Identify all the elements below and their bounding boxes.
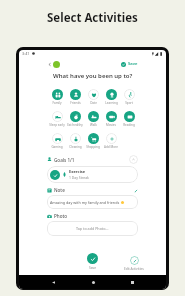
- button[interactable]: Reading: [120, 111, 138, 127]
- button[interactable]: Tap to add Photo...: [47, 221, 138, 236]
- button[interactable]: Collapse goals: [129, 155, 138, 164]
- staticText: Sport: [125, 101, 133, 105]
- button[interactable]: Date: [84, 89, 102, 105]
- staticText: Eat healthy: [67, 123, 83, 127]
- staticText: Date: [90, 101, 97, 105]
- button[interactable]: Shopping: [84, 133, 102, 149]
- staticText: Note: [54, 187, 65, 193]
- staticText: 3:41: [22, 51, 30, 56]
- button[interactable]: Edit Activities: [124, 256, 144, 271]
- staticText: Add More: [104, 145, 118, 149]
- staticText: Gaming: [51, 145, 63, 149]
- staticText: Learning: [105, 101, 118, 105]
- staticText: Shopping: [86, 145, 100, 149]
- staticText: Walk: [90, 123, 97, 127]
- button[interactable]: Sport: [120, 89, 138, 105]
- button[interactable]: Profile: [53, 61, 60, 68]
- button[interactable]: Gaming: [48, 133, 66, 149]
- button[interactable]: Edit note: [133, 188, 138, 193]
- staticText: 1 Day Streak: [69, 175, 89, 180]
- staticText: Save: [128, 61, 138, 67]
- button[interactable]: Cleaning: [66, 133, 84, 149]
- staticText: Friends: [70, 101, 81, 105]
- staticText: Exercise: [69, 169, 86, 174]
- button[interactable]: Amazing day with my family and friends: [47, 195, 138, 209]
- staticText: Reading: [123, 123, 135, 127]
- staticText: Goals 1/1: [54, 157, 75, 163]
- button[interactable]: Movies: [102, 111, 120, 127]
- button[interactable]: Exercise: [47, 166, 138, 183]
- button[interactable]: Back: [48, 277, 58, 287]
- button[interactable]: Friends: [66, 89, 84, 105]
- button[interactable]: Sleep early: [48, 111, 66, 127]
- staticText: Sleep early: [49, 123, 65, 127]
- button[interactable]: Home: [88, 277, 98, 287]
- button[interactable]: Walk: [84, 111, 102, 127]
- staticText: Select Activities: [47, 10, 138, 26]
- staticText: Family: [52, 101, 62, 105]
- staticText: Cleaning: [69, 145, 82, 149]
- staticText: Movies: [106, 123, 116, 127]
- staticText: What have you been up to?: [53, 72, 133, 79]
- staticText: Photo: [54, 213, 68, 219]
- staticText: Amazing day with my family and friends: [50, 200, 120, 205]
- button[interactable]: Add More: [102, 133, 120, 149]
- staticText: Save: [89, 266, 96, 270]
- button[interactable]: Save: [87, 253, 98, 270]
- button[interactable]: Family: [48, 89, 66, 105]
- staticText: Edit Activities: [124, 267, 144, 271]
- button[interactable]: Eat healthy: [66, 111, 84, 127]
- button[interactable]: Recents: [127, 277, 137, 287]
- button[interactable]: Learning: [102, 89, 120, 105]
- button[interactable]: Back: [47, 62, 52, 67]
- staticText: Tap to add Photo...: [76, 226, 109, 231]
- button[interactable]: Save: [121, 61, 138, 67]
